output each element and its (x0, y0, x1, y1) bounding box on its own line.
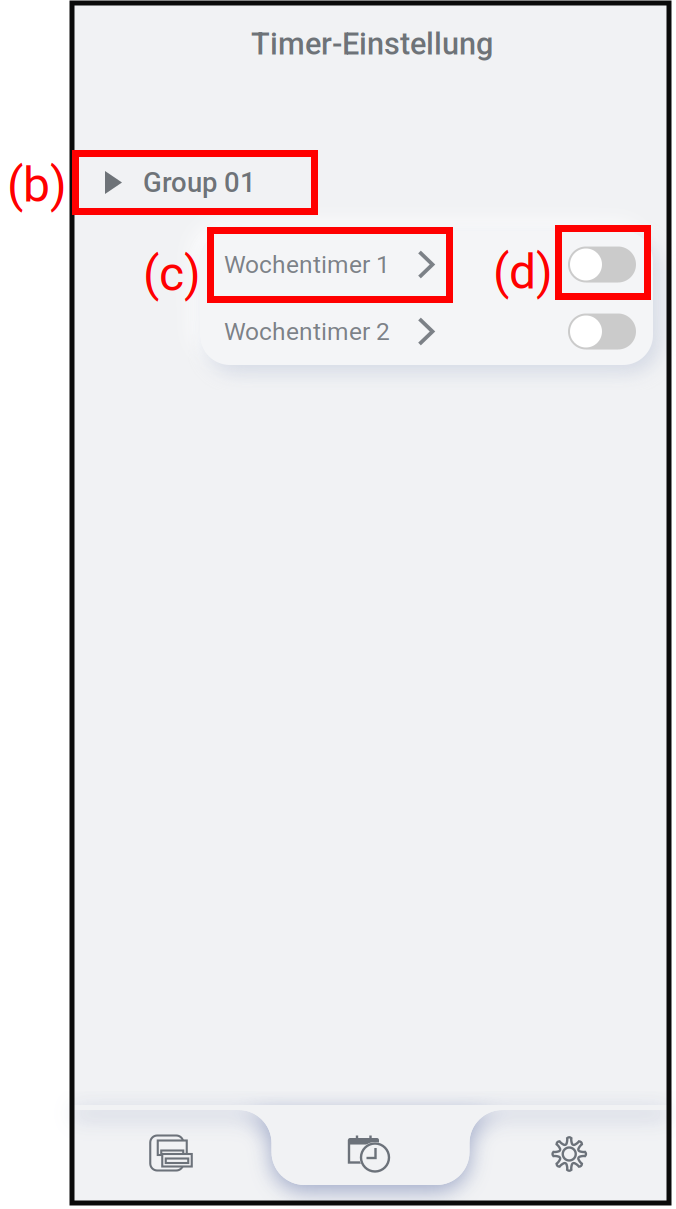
button[interactable]: Timer (271, 1105, 469, 1203)
staticText: (b) (7, 157, 67, 213)
staticText: Timer-Einstellung (251, 26, 493, 62)
button[interactable]: Enable Wochentimer 1 (568, 246, 653, 282)
button[interactable]: Wochentimer 1 (200, 231, 452, 298)
button[interactable]: Settings (469, 1105, 669, 1203)
button[interactable]: Enable Wochentimer 2 (568, 313, 653, 349)
staticText: (c) (143, 246, 201, 302)
staticText: Wochentimer 2 (224, 317, 390, 346)
staticText: Wochentimer 1 (224, 250, 390, 279)
button[interactable]: Devices (72, 1105, 271, 1203)
button[interactable]: Group 01 (72, 151, 669, 214)
staticText: Group 01 (143, 166, 256, 199)
staticText: (d) (493, 244, 553, 300)
button[interactable]: Wochentimer 2 (200, 298, 452, 365)
